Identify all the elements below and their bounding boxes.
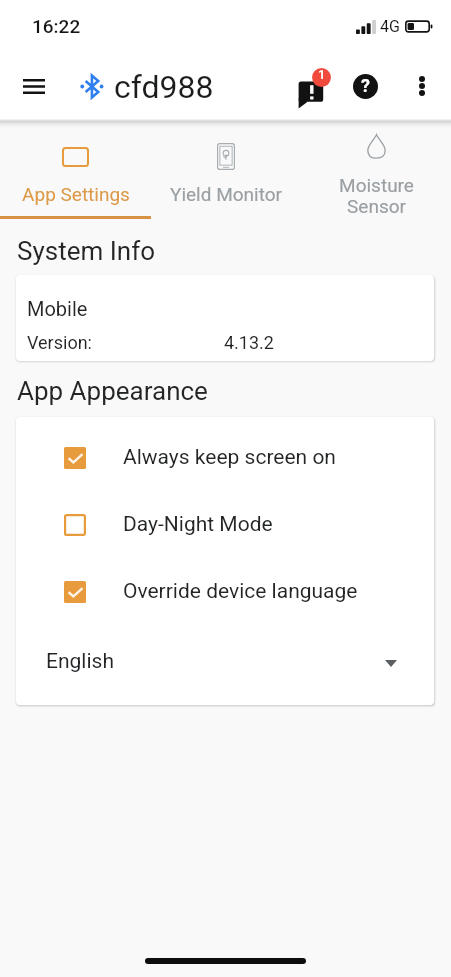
staticText: 1	[318, 67, 326, 82]
button[interactable]: Day-Night Mode	[16, 491, 434, 558]
staticText: English	[46, 649, 114, 674]
staticText: Moisture Sensor	[339, 174, 414, 214]
staticText: Mobile	[27, 297, 88, 320]
staticText: System Info	[17, 236, 155, 266]
button[interactable]: English	[16, 640, 434, 682]
staticText: 16:22	[32, 15, 81, 37]
button[interactable]: Always keep screen on	[16, 424, 434, 491]
button[interactable]: Override device language	[16, 558, 434, 625]
staticText: 4G	[380, 17, 400, 36]
staticText: cfd988	[114, 68, 214, 106]
staticText: Override device language	[123, 579, 358, 604]
button[interactable]: Navigation menu	[10, 63, 57, 110]
button[interactable]: Yield Monitor	[151, 128, 301, 219]
staticText: Always keep screen on	[123, 445, 336, 470]
staticText: Yield Monitor	[170, 183, 282, 205]
button[interactable]: App Settings	[0, 128, 151, 219]
staticText: App Settings	[22, 183, 130, 205]
button[interactable]: Help	[342, 63, 388, 109]
staticText: Day-Night Mode	[123, 512, 273, 537]
button[interactable]: Moisture Sensor	[301, 128, 451, 219]
button[interactable]: More options	[399, 63, 445, 109]
staticText: App Appearance	[17, 376, 208, 406]
staticText: Version:	[27, 332, 92, 353]
button[interactable]: Alerts	[288, 58, 334, 104]
staticText: ?	[361, 75, 370, 96]
staticText: 4.13.2	[224, 332, 274, 353]
